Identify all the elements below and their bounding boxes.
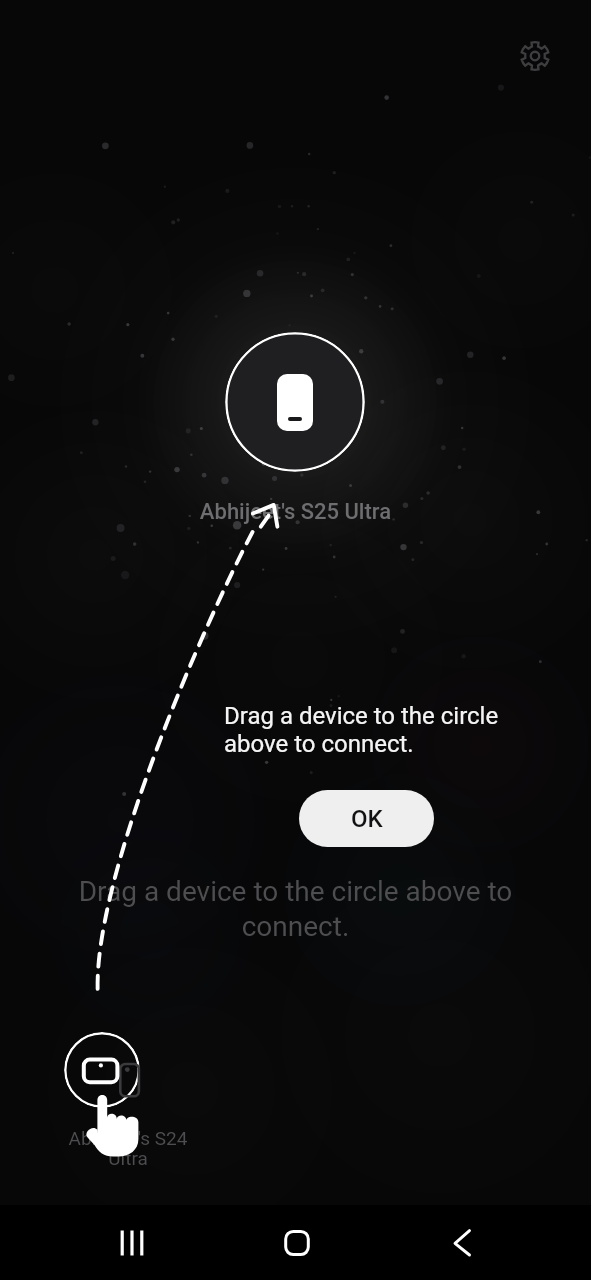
button[interactable]: Recent apps: [97, 1217, 167, 1269]
button[interactable]: Settings: [511, 32, 559, 80]
button[interactable]: Home: [262, 1217, 332, 1269]
button[interactable]: Abhijeet's S24 Ultra: [64, 1032, 140, 1108]
button[interactable]: Abhijeet's S25 Ultra: [225, 332, 365, 472]
staticText: Drag a device to the circle above to con…: [0, 875, 591, 943]
staticText: Drag a device to the circle above to con…: [224, 702, 499, 758]
button[interactable]: Back: [427, 1217, 497, 1269]
button[interactable]: OK: [299, 790, 434, 847]
staticText: Abhijeet's S25 Ultra: [0, 499, 591, 525]
staticText: Abhijeet's S24 Ultra: [48, 1127, 208, 1169]
staticText: OK: [351, 805, 383, 833]
